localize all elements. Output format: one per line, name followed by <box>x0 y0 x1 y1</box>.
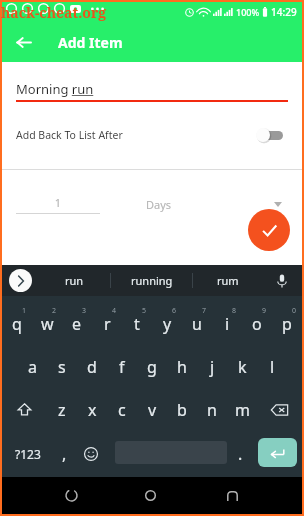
staticText: h <box>177 356 187 378</box>
staticText: running <box>131 273 173 288</box>
button[interactable]: Add Back To List After <box>2 121 302 149</box>
button[interactable]: m <box>227 388 257 431</box>
staticText: u <box>192 313 202 335</box>
button[interactable]: 0 <box>272 302 302 345</box>
button[interactable]: rum <box>193 265 262 296</box>
button[interactable]: Back <box>5 24 41 60</box>
staticText: z <box>58 399 66 421</box>
staticText: w <box>41 313 54 335</box>
button[interactable]: n <box>197 388 227 431</box>
button[interactable]: d <box>77 345 107 388</box>
button[interactable]: 1 <box>2 302 32 345</box>
staticText: Days <box>146 197 172 212</box>
staticText: ?123 <box>15 446 41 462</box>
staticText: 1 <box>22 306 27 316</box>
button[interactable]: x <box>77 388 107 431</box>
staticText: v <box>148 399 157 421</box>
button[interactable]: z <box>47 388 77 431</box>
button[interactable]: b <box>167 388 197 431</box>
button[interactable]: k <box>227 345 257 388</box>
staticText: b <box>177 399 187 421</box>
staticText: hack-cheat.org <box>1 3 107 22</box>
button[interactable]: s <box>47 345 77 388</box>
button[interactable]: 4 <box>92 302 122 345</box>
staticText: 14:29 <box>271 5 297 19</box>
button[interactable]: Recents <box>196 477 268 514</box>
staticText: 4 <box>112 306 117 316</box>
staticText: , <box>62 443 67 465</box>
button[interactable]: Confirm <box>248 209 290 251</box>
button[interactable]: g <box>137 345 167 388</box>
button[interactable]: Back <box>38 477 104 514</box>
staticText: y <box>163 313 172 335</box>
staticText: . <box>238 443 243 465</box>
staticText: n <box>207 399 217 421</box>
staticText: f <box>119 356 125 378</box>
button[interactable]: h <box>167 345 197 388</box>
button[interactable]: 7 <box>182 302 212 345</box>
staticText: x <box>88 399 97 421</box>
staticText: a <box>28 356 37 378</box>
staticText: 2 <box>52 306 57 316</box>
staticText: Add Item <box>58 33 123 52</box>
button[interactable]: Select unit <box>266 192 290 216</box>
button[interactable]: , <box>53 431 76 477</box>
staticText: run <box>65 273 84 288</box>
button[interactable]: Home <box>104 477 196 514</box>
staticText: e <box>72 313 82 335</box>
button[interactable]: l <box>257 345 287 388</box>
staticText: q <box>12 313 22 335</box>
staticText: j <box>210 356 215 378</box>
button[interactable]: Shift <box>2 388 47 431</box>
button[interactable]: ?123 <box>2 431 53 477</box>
button[interactable]: 5 <box>122 302 152 345</box>
staticText: 9 <box>262 306 267 316</box>
button[interactable]: running <box>111 265 192 296</box>
button[interactable]: 9 <box>242 302 272 345</box>
button[interactable]: run <box>39 265 110 296</box>
button[interactable]: Enter <box>258 438 297 467</box>
staticText: g <box>147 356 157 378</box>
button[interactable]: 2 <box>32 302 62 345</box>
button[interactable]: j <box>197 345 227 388</box>
staticText: d <box>87 356 97 378</box>
staticText: t <box>134 313 140 335</box>
staticText: i <box>225 313 230 335</box>
staticText: o <box>252 313 262 335</box>
staticText: 6 <box>172 306 177 316</box>
button[interactable]: v <box>137 388 167 431</box>
staticText: m <box>235 399 250 421</box>
button[interactable]: Expand suggestions <box>2 265 39 296</box>
staticText: Morning run <box>16 80 94 98</box>
button[interactable]: 6 <box>152 302 182 345</box>
button[interactable]: 3 <box>62 302 92 345</box>
button[interactable]: c <box>107 388 137 431</box>
button[interactable]: Emoji <box>76 431 106 477</box>
button[interactable]: Backspace <box>257 388 302 431</box>
staticText: p <box>282 313 292 335</box>
button[interactable]: 8 <box>212 302 242 345</box>
button[interactable]: . <box>229 431 251 477</box>
staticText: 100% <box>236 6 260 18</box>
staticText: r <box>104 313 111 335</box>
staticText: c <box>118 399 126 421</box>
button[interactable]: Voice input <box>262 265 302 296</box>
staticText: 1 <box>16 195 100 210</box>
staticText: 3 <box>82 306 87 316</box>
staticText: Add Back To List After <box>16 128 123 142</box>
staticText: k <box>238 356 247 378</box>
staticText: l <box>270 356 275 378</box>
staticText: 7 <box>202 306 207 316</box>
staticText: 8 <box>232 306 237 316</box>
button[interactable]: f <box>107 345 137 388</box>
staticText: rum <box>217 273 239 288</box>
staticText: s <box>58 356 66 378</box>
staticText: 0 <box>292 306 297 316</box>
button[interactable]: a <box>17 345 47 388</box>
staticText: 5 <box>142 306 147 316</box>
